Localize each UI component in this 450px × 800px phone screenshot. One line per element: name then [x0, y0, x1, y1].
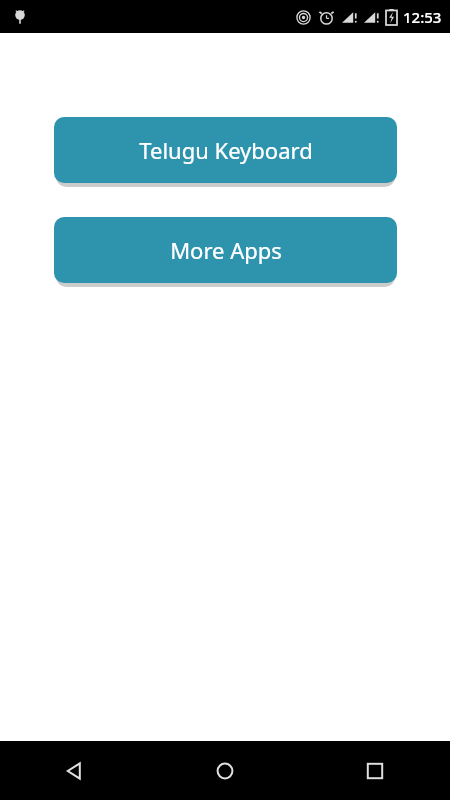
button[interactable]: Home — [150, 741, 300, 800]
staticText: 12:53 — [403, 7, 442, 27]
button[interactable]: Telugu Keyboard — [54, 117, 397, 183]
button[interactable]: More Apps — [54, 217, 397, 283]
staticText: Telugu Keyboard — [139, 135, 313, 165]
button[interactable]: Back — [0, 741, 150, 800]
staticText: More Apps — [170, 235, 282, 265]
button[interactable]: Recent apps — [300, 741, 450, 800]
